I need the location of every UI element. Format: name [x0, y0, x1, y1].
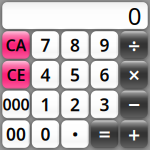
staticText: 2	[70, 93, 80, 116]
staticText: 00	[6, 123, 26, 146]
button[interactable]: Subtract	[120, 91, 148, 118]
staticText: 5	[70, 63, 80, 86]
staticText: 8	[70, 33, 80, 56]
staticText: 1	[40, 93, 50, 116]
button[interactable]: Divide	[120, 31, 148, 59]
staticText: CA	[5, 34, 26, 56]
staticText: +	[128, 120, 140, 148]
button[interactable]: 5	[61, 61, 89, 88]
staticText: ·	[71, 116, 78, 150]
button[interactable]: Equals	[91, 120, 118, 148]
button[interactable]: 1	[32, 91, 59, 118]
staticText: 0	[128, 0, 142, 32]
staticText: ÷	[128, 31, 140, 59]
staticText: 0	[40, 123, 50, 146]
staticText: 3	[99, 93, 109, 116]
staticText: 6	[99, 63, 109, 86]
button[interactable]: 3	[91, 91, 118, 118]
button[interactable]: 9	[91, 31, 118, 59]
button[interactable]: 000	[2, 91, 30, 118]
staticText: 000	[2, 94, 29, 115]
button[interactable]: CA	[2, 31, 30, 59]
button[interactable]: 4	[32, 61, 59, 88]
button[interactable]: CE	[2, 61, 30, 88]
button[interactable]: 2	[61, 91, 89, 118]
button[interactable]: 6	[91, 61, 118, 88]
staticText: 4	[40, 63, 50, 86]
button[interactable]: 00	[2, 120, 30, 148]
staticText: 7	[40, 33, 50, 56]
staticText: CE	[6, 64, 25, 85]
staticText: ×	[128, 60, 140, 89]
button[interactable]: 0	[32, 120, 59, 148]
staticText: =	[98, 120, 110, 148]
button[interactable]: 7	[32, 31, 59, 59]
staticText: 9	[99, 33, 109, 56]
button[interactable]: Multiply	[120, 61, 148, 88]
button[interactable]: Decimal point	[61, 120, 89, 148]
button[interactable]: 8	[61, 31, 89, 59]
button[interactable]: Add	[120, 120, 148, 148]
staticText: −	[128, 90, 140, 118]
